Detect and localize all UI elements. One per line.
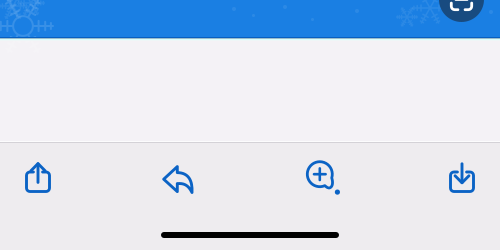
button[interactable]: Scan document xyxy=(439,0,484,22)
button[interactable]: Download xyxy=(424,150,500,205)
button[interactable]: Share xyxy=(0,150,76,205)
button[interactable]: Back xyxy=(140,152,216,207)
button[interactable]: Zoom in xyxy=(285,149,361,204)
